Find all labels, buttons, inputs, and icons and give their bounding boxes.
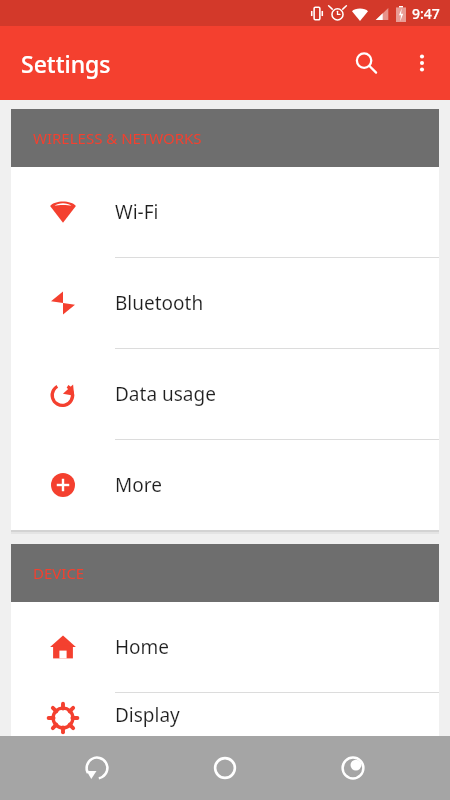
staticText: Bluetooth xyxy=(115,290,204,316)
button[interactable]: Display xyxy=(11,693,439,736)
staticText: DEVICE xyxy=(33,563,85,583)
staticText: Settings xyxy=(21,48,111,79)
button[interactable]: Search xyxy=(338,35,394,91)
staticText: Home xyxy=(115,634,170,660)
button[interactable]: Home xyxy=(11,602,439,693)
button[interactable]: Back xyxy=(66,737,128,799)
staticText: 9:47 xyxy=(412,4,440,23)
button[interactable]: More xyxy=(11,440,439,530)
button[interactable]: Bluetooth xyxy=(11,258,439,349)
staticText: WIRELESS & NETWORKS xyxy=(33,128,202,148)
button[interactable]: Wi-Fi xyxy=(11,167,439,258)
button[interactable]: More options xyxy=(394,35,450,91)
staticText: More xyxy=(115,472,162,498)
button[interactable]: Data usage xyxy=(11,349,439,440)
staticText: Wi-Fi xyxy=(115,199,159,225)
button[interactable]: Recent apps xyxy=(322,737,384,799)
button[interactable]: Home xyxy=(194,737,256,799)
staticText: Display xyxy=(115,702,180,728)
staticText: Data usage xyxy=(115,381,216,407)
